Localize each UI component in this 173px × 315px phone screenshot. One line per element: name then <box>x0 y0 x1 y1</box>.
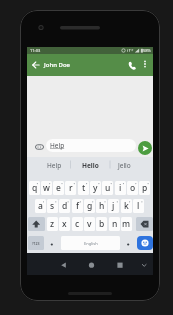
button[interactable]: d <box>59 199 70 213</box>
button[interactable]: ?123 <box>28 236 44 250</box>
button[interactable]: z <box>47 217 58 231</box>
button[interactable]: j <box>108 199 119 213</box>
button[interactable]: k <box>121 199 132 213</box>
button[interactable]: o <box>127 181 138 195</box>
button[interactable]: u <box>102 181 113 195</box>
button[interactable] <box>86 260 97 271</box>
staticText: m <box>122 218 131 230</box>
button[interactable]: f <box>72 199 83 213</box>
button[interactable]: a <box>35 199 46 213</box>
staticText: English <box>84 241 98 246</box>
staticText: g <box>87 200 93 212</box>
staticText: 11:03 <box>30 48 41 53</box>
staticText: e <box>56 182 61 194</box>
button[interactable]: q <box>29 181 40 195</box>
button[interactable] <box>31 60 41 70</box>
staticText: d <box>62 200 68 212</box>
staticText: a <box>38 200 43 212</box>
button[interactable]: n <box>109 217 120 231</box>
button[interactable] <box>137 236 153 250</box>
button[interactable]: s <box>47 199 58 213</box>
button[interactable]: p <box>139 181 150 195</box>
staticText: y <box>93 182 98 194</box>
staticText: John Doe <box>44 61 70 69</box>
button[interactable] <box>138 141 152 155</box>
button[interactable] <box>61 236 120 250</box>
button[interactable]: v <box>84 217 95 231</box>
staticText: b <box>99 218 105 230</box>
button[interactable]: i <box>115 181 126 195</box>
button[interactable]: l <box>133 199 144 213</box>
staticText: s <box>50 200 55 212</box>
button[interactable] <box>136 217 153 231</box>
staticText: u <box>105 182 111 194</box>
staticText: Help <box>50 141 65 150</box>
staticText: k <box>124 200 129 212</box>
staticText: r <box>69 182 73 194</box>
button[interactable]: b <box>96 217 107 231</box>
staticText: n <box>112 218 118 230</box>
staticText: Hello <box>82 161 99 170</box>
staticText: Jello <box>118 161 131 170</box>
button[interactable] <box>114 260 125 271</box>
staticText: c <box>75 218 80 230</box>
button[interactable]: g <box>84 199 95 213</box>
button[interactable] <box>139 260 149 270</box>
button[interactable]: Hello <box>77 159 104 171</box>
button[interactable]: r <box>65 181 76 195</box>
staticText: p <box>142 182 148 194</box>
staticText: h <box>99 200 105 212</box>
button[interactable] <box>35 144 44 150</box>
button[interactable]: c <box>72 217 83 231</box>
staticText: Help <box>47 161 62 170</box>
button[interactable]: m <box>121 217 132 231</box>
button[interactable]: Help <box>41 159 67 171</box>
button[interactable] <box>126 59 138 71</box>
button[interactable]: y <box>90 181 101 195</box>
staticText: 58% <box>143 48 151 53</box>
button[interactable] <box>123 236 135 250</box>
staticText: z <box>50 218 55 230</box>
button[interactable]: w <box>41 181 52 195</box>
button[interactable] <box>46 236 58 250</box>
button[interactable]: x <box>59 217 70 231</box>
staticText: v <box>87 218 92 230</box>
button[interactable]: e <box>53 181 64 195</box>
staticText: x <box>62 218 67 230</box>
button[interactable] <box>140 59 150 69</box>
staticText: ?123 <box>32 241 40 246</box>
button[interactable] <box>58 260 69 271</box>
staticText: l <box>137 200 140 212</box>
staticText: t <box>82 182 86 194</box>
staticText: w <box>43 182 50 194</box>
button[interactable]: Help <box>46 139 136 152</box>
staticText: f <box>76 200 80 212</box>
button[interactable]: h <box>96 199 107 213</box>
button[interactable]: Jello <box>111 159 137 171</box>
staticText: o <box>130 182 136 194</box>
button[interactable]: t <box>78 181 89 195</box>
button[interactable] <box>28 217 45 231</box>
staticText: q <box>32 182 38 194</box>
staticText: i <box>119 182 122 194</box>
staticText: j <box>112 200 115 212</box>
